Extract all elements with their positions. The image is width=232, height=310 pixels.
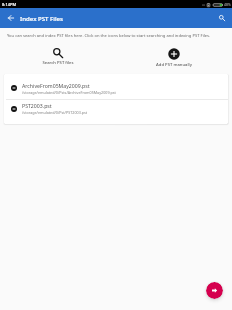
button[interactable]: PST2003.pst — [4, 100, 228, 124]
staticText: Search PST files — [42, 60, 74, 66]
button[interactable]: Next — [206, 282, 223, 299]
staticText: You can search and index PST files here.… — [7, 33, 225, 39]
staticText: /storage/emulated/0/Psts/ArchiveFrom05Ma… — [22, 90, 116, 95]
button[interactable]: Back — [5, 12, 17, 24]
button[interactable]: Search PST files — [34, 47, 82, 67]
staticText: Add PST manually — [156, 62, 192, 68]
staticText: /storage/emulated/0/Pst/PST2003.pst — [22, 110, 88, 115]
staticText: PST2003.pst — [22, 102, 52, 109]
button[interactable]: ArchiveFrom05May2009.pst — [4, 74, 228, 99]
staticText: Index PST Files — [20, 14, 64, 22]
button[interactable]: Search — [216, 12, 228, 24]
button[interactable]: Add PST manually — [148, 47, 200, 69]
staticText: 48% — [224, 2, 231, 7]
staticText: ArchiveFrom05May2009.pst — [22, 82, 90, 89]
staticText: 8:14PM — [2, 2, 17, 7]
